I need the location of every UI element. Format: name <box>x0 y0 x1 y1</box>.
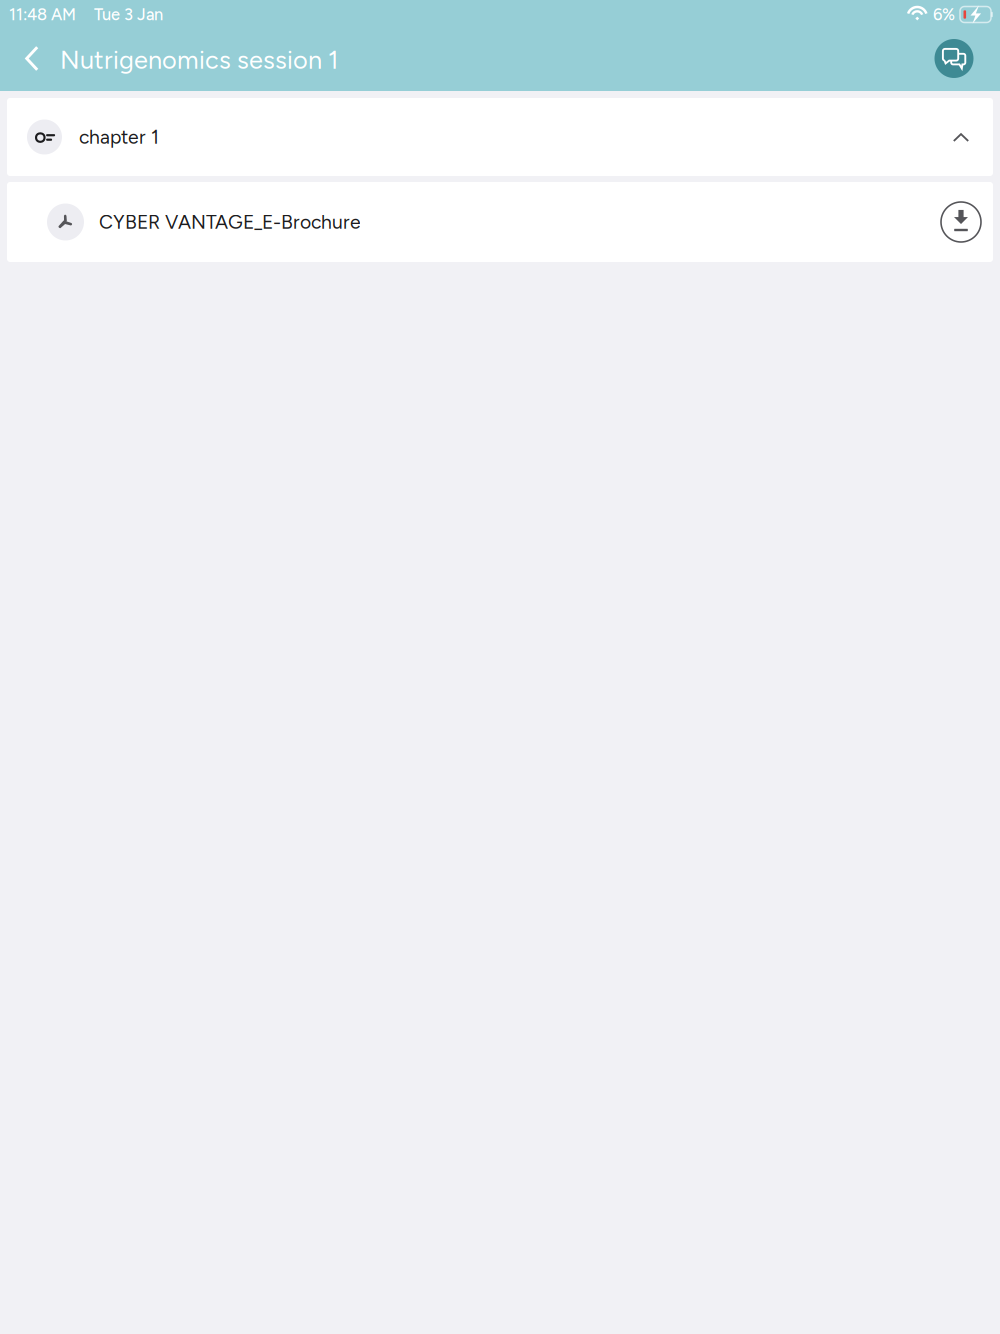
button[interactable]: Collapse chapter <box>951 122 968 152</box>
button[interactable]: Download <box>941 202 981 242</box>
staticText: Tue 3 Jan <box>94 5 163 24</box>
staticText: CYBER VANTAGE_E-Brochure <box>99 210 361 234</box>
button[interactable]: Messages <box>930 36 978 84</box>
button[interactable]: CYBER VANTAGE_E-Brochure <box>7 182 993 262</box>
button[interactable]: chapter 1 <box>7 98 993 176</box>
staticText: 11:48 AM <box>9 5 76 24</box>
button[interactable]: Back <box>10 35 54 85</box>
staticText: 6% <box>933 5 955 24</box>
staticText: chapter 1 <box>79 125 159 149</box>
staticText: Nutrigenomics session 1 <box>60 45 338 75</box>
